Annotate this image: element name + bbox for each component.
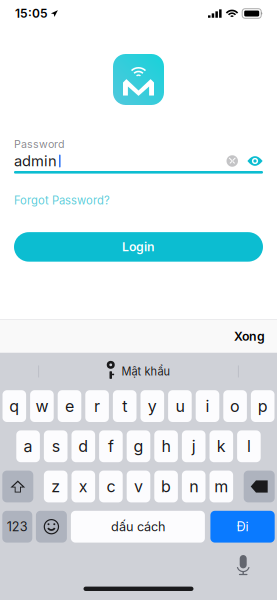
staticText: dấu cách: [111, 519, 165, 534]
button[interactable]: r: [85, 390, 109, 422]
button[interactable]: d: [71, 430, 95, 462]
staticText: l: [247, 437, 251, 456]
staticText: a: [24, 437, 33, 456]
button[interactable]: Xong: [228, 323, 271, 350]
staticText: Đi: [237, 519, 249, 534]
staticText: j: [192, 437, 196, 456]
staticText: y: [148, 396, 157, 416]
staticText: f: [108, 437, 114, 456]
button[interactable]: Đi: [210, 511, 275, 543]
staticText: n: [189, 477, 198, 496]
staticText: h: [162, 437, 171, 456]
button[interactable]: q: [2, 390, 26, 422]
staticText: t: [122, 396, 127, 416]
button[interactable]: n: [182, 471, 205, 502]
staticText: p: [258, 396, 268, 416]
button[interactable]: b: [154, 471, 178, 502]
button[interactable]: h: [154, 430, 178, 462]
button[interactable]: Show password: [238, 155, 263, 167]
button[interactable]: 123: [2, 511, 32, 543]
staticText: Mật khẩu: [121, 365, 170, 378]
staticText: Xong: [234, 329, 265, 344]
staticText: i: [205, 396, 209, 416]
button[interactable]: p: [251, 390, 274, 422]
button[interactable]: dấu cách: [71, 511, 205, 543]
staticText: d: [78, 437, 88, 456]
staticText: z: [51, 477, 60, 496]
button[interactable]: Login: [14, 232, 263, 262]
staticText: v: [134, 477, 143, 496]
button[interactable]: o: [223, 390, 247, 422]
staticText: s: [52, 437, 60, 456]
button[interactable]: g: [127, 430, 150, 462]
staticText: Password: [14, 137, 65, 150]
staticText: x: [79, 477, 88, 496]
staticText: Forgot Password?: [14, 194, 110, 207]
staticText: b: [161, 477, 171, 496]
button[interactable]: Mật khẩu: [106, 357, 170, 385]
button[interactable]: Emoji: [36, 511, 67, 543]
button[interactable]: Dictate: [235, 554, 252, 576]
button[interactable]: y: [140, 390, 164, 422]
button[interactable]: Forgot Password?: [14, 194, 110, 207]
staticText: admin: [14, 152, 57, 170]
button[interactable]: j: [182, 430, 205, 462]
staticText: 15:05: [15, 6, 48, 21]
button[interactable]: x: [71, 471, 95, 502]
button[interactable]: t: [113, 390, 136, 422]
button[interactable]: e: [58, 390, 81, 422]
button[interactable]: c: [99, 471, 123, 502]
button[interactable]: i: [196, 390, 219, 422]
button[interactable]: l: [237, 430, 261, 462]
button[interactable]: a: [16, 430, 40, 462]
staticText: q: [9, 396, 19, 416]
button[interactable]: w: [30, 390, 54, 422]
button[interactable]: f: [99, 430, 123, 462]
button[interactable]: v: [127, 471, 150, 502]
button[interactable]: u: [168, 390, 192, 422]
staticText: c: [106, 477, 115, 496]
staticText: o: [230, 396, 240, 416]
staticText: g: [133, 437, 143, 456]
button[interactable]: z: [44, 471, 67, 502]
staticText: 123: [7, 519, 28, 534]
button[interactable]: k: [209, 430, 233, 462]
button[interactable]: m: [209, 471, 233, 502]
staticText: w: [35, 396, 48, 416]
button[interactable]: Delete: [244, 471, 275, 502]
button[interactable]: Clear text: [226, 155, 238, 167]
button[interactable]: s: [44, 430, 67, 462]
staticText: r: [94, 396, 100, 416]
staticText: k: [217, 437, 226, 456]
button[interactable]: Shift: [2, 471, 33, 502]
staticText: Login: [122, 239, 155, 254]
staticText: m: [214, 477, 228, 496]
staticText: e: [65, 396, 74, 416]
staticText: u: [175, 396, 184, 416]
